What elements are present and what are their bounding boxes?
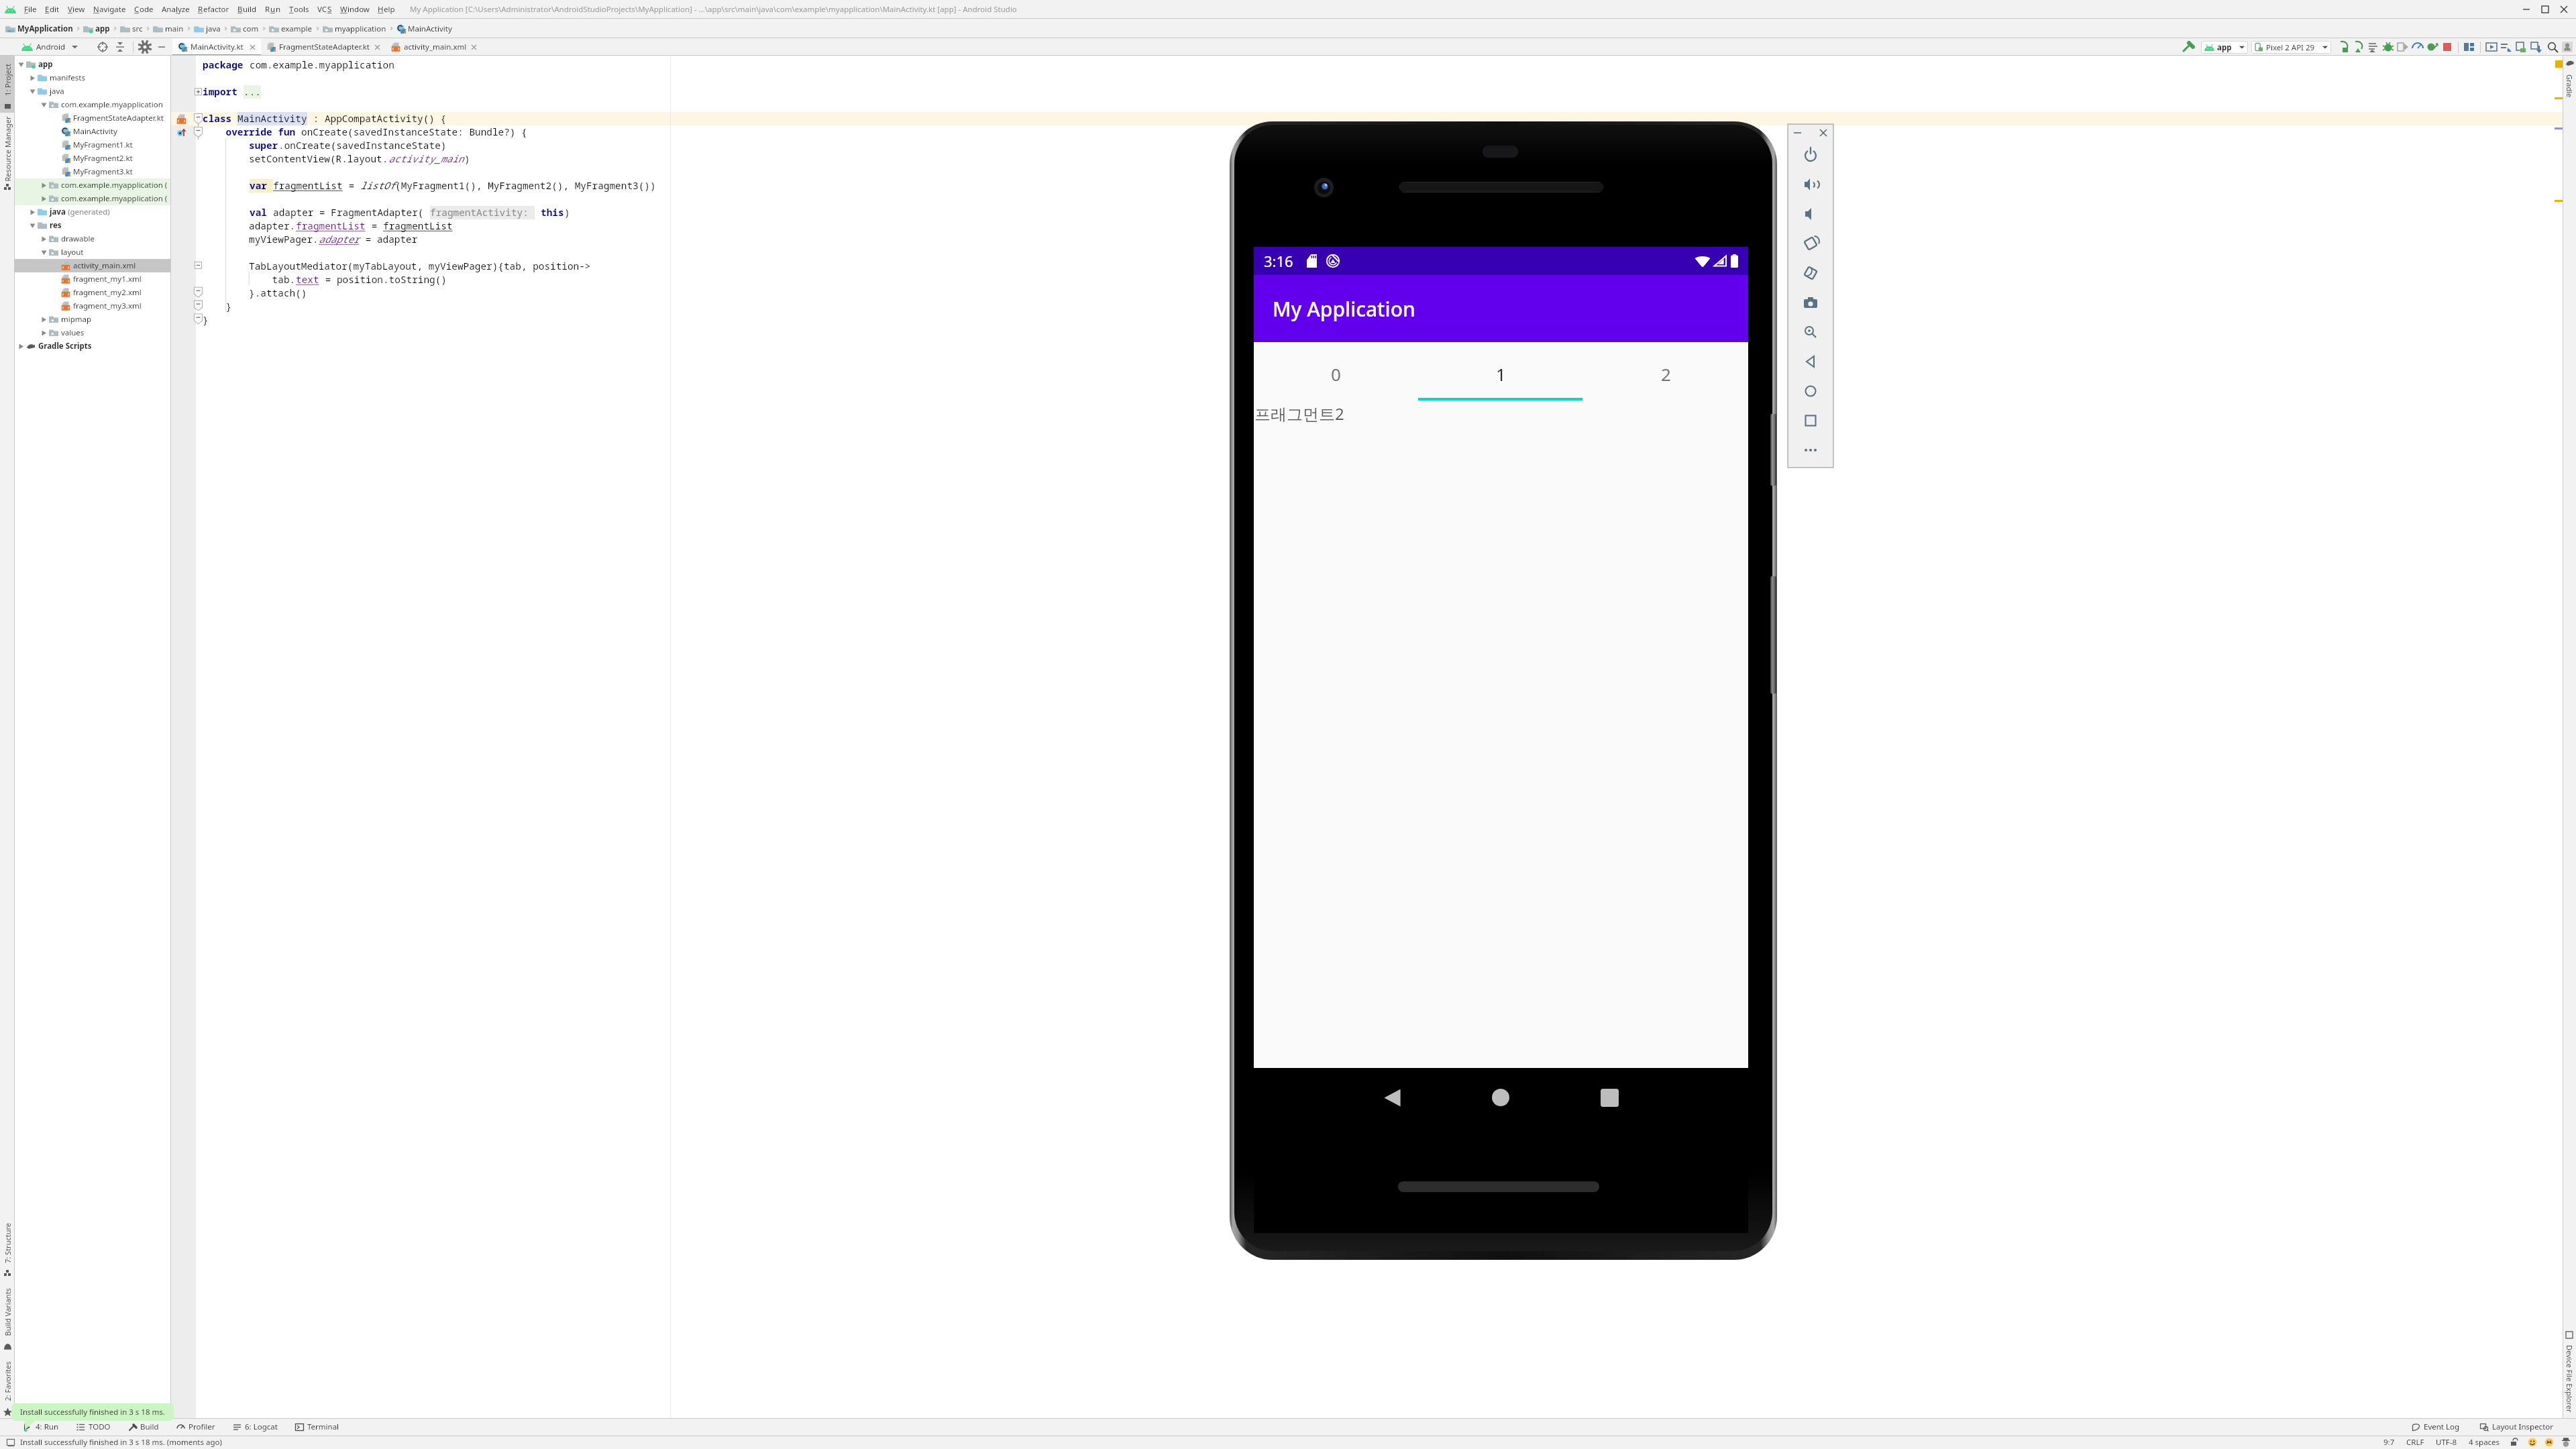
button[interactable]: Happy bbox=[2528, 1438, 2537, 1447]
button[interactable]: myapplication bbox=[321, 23, 388, 34]
button[interactable]: Gradle Scripts bbox=[15, 339, 171, 353]
button[interactable]: Build bbox=[127, 1418, 160, 1436]
button[interactable]: Rotate left bbox=[1796, 229, 1825, 258]
button[interactable]: Event Log bbox=[2410, 1418, 2461, 1436]
button[interactable]: 0 bbox=[1254, 342, 1418, 400]
button[interactable]: N bbox=[89, 4, 130, 15]
button[interactable]: Gradle bbox=[2563, 56, 2576, 105]
button[interactable]: Device Monitor bbox=[2499, 40, 2514, 54]
button[interactable]: Attach debugger bbox=[2366, 40, 2381, 54]
button[interactable]: Home bbox=[1446, 1068, 1555, 1127]
button[interactable]: activity_main.xml bbox=[15, 259, 171, 272]
button[interactable]: Close emulator bbox=[1816, 125, 1831, 140]
button[interactable]: AVD Manager bbox=[2484, 40, 2499, 54]
button[interactable]: MyFragment1.kt bbox=[15, 138, 171, 152]
button[interactable]: Device File Explorer bbox=[2563, 1328, 2576, 1418]
button[interactable]: app bbox=[82, 23, 111, 34]
button[interactable]: MyFragment3.kt bbox=[15, 165, 171, 178]
button[interactable]: Overview bbox=[1796, 406, 1825, 435]
button[interactable]: MyApplication bbox=[4, 23, 74, 34]
button[interactable]: Layout Inspector bbox=[2514, 40, 2528, 54]
button[interactable]: MainActivity.kt bbox=[172, 38, 261, 56]
button[interactable]: Profiler bbox=[2410, 40, 2425, 54]
button[interactable]: Resource Manager bbox=[0, 113, 15, 194]
button[interactable]: manifests bbox=[15, 71, 171, 85]
button[interactable]: layout bbox=[15, 246, 171, 259]
button[interactable]: com.example.myapplication ( bbox=[15, 178, 171, 192]
button[interactable]: Ana bbox=[158, 4, 194, 15]
button[interactable]: Sad bbox=[2544, 1438, 2554, 1447]
button[interactable]: 7: Structure bbox=[0, 1215, 15, 1280]
button[interactable]: Apply changes bbox=[2425, 40, 2440, 54]
button[interactable]: values bbox=[15, 326, 171, 339]
button[interactable]: Rotate right bbox=[1796, 258, 1825, 288]
button[interactable]: com.example.myapplication bbox=[15, 98, 171, 111]
button[interactable]: drawable bbox=[15, 232, 171, 246]
button[interactable]: Settings bbox=[138, 40, 152, 54]
button[interactable]: fragment_my2.xml bbox=[15, 286, 171, 299]
button[interactable]: More bbox=[1796, 435, 1825, 465]
button[interactable]: example bbox=[268, 23, 314, 34]
button[interactable]: W bbox=[336, 4, 374, 15]
button[interactable]: TODO bbox=[75, 1418, 112, 1436]
button[interactable]: Collapse All bbox=[113, 40, 127, 54]
button[interactable]: Screenshot bbox=[1796, 288, 1825, 317]
button[interactable]: Select Opened File bbox=[96, 40, 109, 54]
button[interactable]: R bbox=[261, 4, 285, 15]
button[interactable]: Power bbox=[1796, 140, 1825, 170]
button[interactable]: Run with coverage bbox=[2351, 40, 2366, 54]
button[interactable]: Zoom bbox=[1796, 317, 1825, 347]
button[interactable]: FragmentStateAdapter.kt bbox=[261, 38, 386, 56]
button[interactable]: Profiler bbox=[175, 1418, 217, 1436]
button[interactable]: Home bbox=[1796, 376, 1825, 406]
button[interactable]: Debug bbox=[2381, 40, 2396, 54]
button[interactable]: main bbox=[152, 23, 185, 34]
button[interactable]: 4: Run bbox=[22, 1418, 60, 1436]
button[interactable]: MyFragment2.kt bbox=[15, 152, 171, 165]
button[interactable]: Hector bbox=[2561, 1438, 2571, 1447]
button[interactable]: T bbox=[285, 4, 313, 15]
button[interactable]: VC bbox=[313, 4, 336, 15]
button[interactable]: Make project bbox=[2181, 40, 2196, 54]
button[interactable]: MainActivity bbox=[395, 23, 453, 34]
button[interactable]: Recents bbox=[1555, 1068, 1664, 1127]
button[interactable]: Lock bbox=[2510, 1438, 2519, 1447]
button[interactable]: SDK Manager bbox=[2462, 40, 2477, 54]
button[interactable]: java bbox=[15, 85, 171, 98]
button[interactable]: Build Variants bbox=[0, 1280, 15, 1353]
button[interactable]: 1: Project bbox=[0, 56, 15, 113]
button[interactable]: V bbox=[64, 4, 89, 15]
button[interactable]: E bbox=[41, 4, 64, 15]
button[interactable]: 2 bbox=[1583, 342, 1748, 400]
button[interactable]: F bbox=[20, 4, 41, 15]
button[interactable]: activity_main.xml bbox=[386, 38, 482, 56]
button[interactable]: app bbox=[2201, 41, 2248, 54]
button[interactable]: MainActivity bbox=[15, 125, 171, 138]
button[interactable]: src bbox=[119, 23, 144, 34]
button[interactable]: Stop bbox=[2440, 40, 2455, 54]
button[interactable]: Search bbox=[2545, 40, 2560, 54]
button[interactable]: fragment_my3.xml bbox=[15, 299, 171, 313]
button[interactable]: Back bbox=[1338, 1068, 1446, 1127]
button[interactable]: Hide bbox=[155, 40, 168, 54]
button[interactable]: Terminal bbox=[294, 1418, 341, 1436]
button[interactable]: Pixel 2 API 29 bbox=[2251, 41, 2331, 54]
button[interactable]: H bbox=[374, 4, 399, 15]
button[interactable]: Layout Inspector bbox=[2479, 1418, 2555, 1436]
button[interactable]: com bbox=[229, 23, 260, 34]
button[interactable]: Volume down bbox=[1796, 199, 1825, 229]
button[interactable]: java bbox=[193, 23, 222, 34]
button[interactable]: java bbox=[15, 205, 171, 219]
button[interactable]: Sync project bbox=[2528, 40, 2543, 54]
button[interactable]: 2: Favorites bbox=[0, 1353, 15, 1418]
button[interactable]: fragment_my1.xml bbox=[15, 272, 171, 286]
button[interactable]: C bbox=[130, 4, 158, 15]
button[interactable]: 6: Logcat bbox=[231, 1418, 279, 1436]
button[interactable]: Run bbox=[2337, 40, 2351, 54]
button[interactable]: Maximize bbox=[2536, 1, 2555, 17]
button[interactable]: Back bbox=[1796, 347, 1825, 376]
button[interactable]: Volume up bbox=[1796, 170, 1825, 199]
button[interactable]: res bbox=[15, 219, 171, 232]
button[interactable]: B bbox=[233, 4, 261, 15]
button[interactable]: com.example.myapplication ( bbox=[15, 192, 171, 205]
